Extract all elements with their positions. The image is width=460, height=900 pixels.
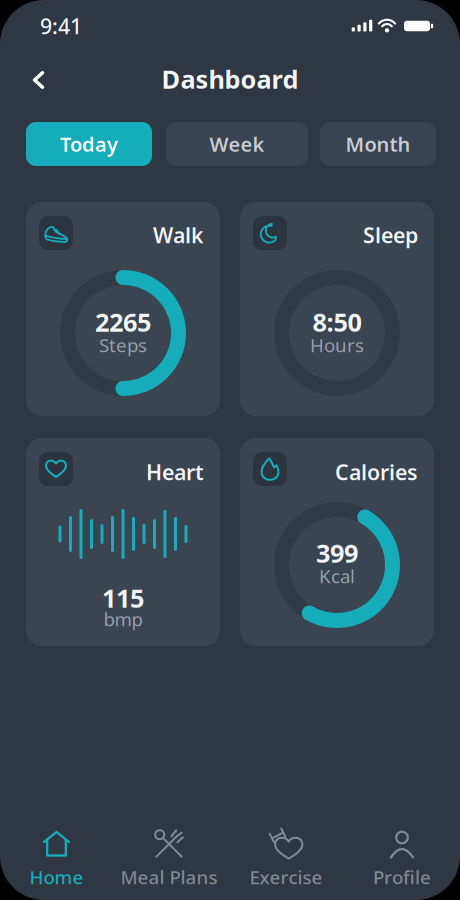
- button[interactable]: Back: [16, 58, 60, 102]
- staticText: Week: [209, 131, 264, 157]
- staticText: Kcal: [319, 564, 355, 588]
- staticText: Sleep: [363, 221, 418, 249]
- staticText: 2265: [95, 305, 151, 339]
- button[interactable]: Today: [26, 122, 152, 166]
- staticText: Heart: [146, 458, 204, 486]
- staticText: Profile: [373, 865, 431, 889]
- staticText: Dashboard: [161, 62, 298, 96]
- staticText: 399: [316, 536, 358, 570]
- button[interactable]: Exercise: [231, 827, 341, 891]
- staticText: Exercise: [249, 865, 322, 889]
- staticText: Calories: [335, 458, 418, 486]
- staticText: bmp: [103, 607, 142, 631]
- staticText: Month: [345, 131, 410, 157]
- staticText: Today: [60, 131, 118, 157]
- button[interactable]: Week: [166, 122, 308, 166]
- button[interactable]: Home: [1, 827, 111, 891]
- button[interactable]: Meal Plans: [114, 827, 224, 891]
- staticText: 9:41: [40, 12, 82, 40]
- button[interactable]: Profile: [347, 827, 457, 891]
- button[interactable]: Month: [320, 122, 436, 166]
- staticText: Steps: [99, 333, 147, 357]
- staticText: Meal Plans: [120, 865, 217, 889]
- staticText: Hours: [310, 333, 364, 357]
- staticText: 115: [102, 581, 144, 615]
- staticText: 8:50: [312, 305, 361, 339]
- staticText: Walk: [153, 221, 204, 249]
- staticText: Home: [29, 865, 83, 889]
